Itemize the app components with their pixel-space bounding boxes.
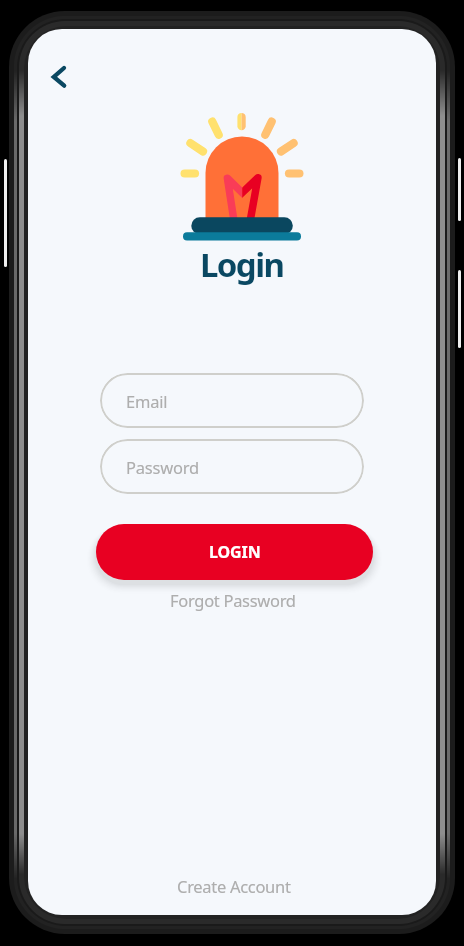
staticText: LOGIN bbox=[209, 541, 261, 563]
button[interactable]: Forgot Password bbox=[133, 587, 333, 613]
button[interactable]: Back bbox=[38, 56, 80, 98]
staticText: Create Account bbox=[177, 875, 291, 897]
button[interactable]: Create Account bbox=[134, 873, 334, 899]
staticText: Forgot Password bbox=[170, 589, 296, 611]
staticText: Email bbox=[126, 390, 168, 412]
button[interactable]: LOGIN bbox=[96, 524, 373, 580]
button[interactable]: Email bbox=[100, 373, 364, 428]
button[interactable]: Password bbox=[100, 439, 364, 494]
staticText: Login bbox=[200, 242, 284, 287]
staticText: Password bbox=[126, 456, 200, 478]
